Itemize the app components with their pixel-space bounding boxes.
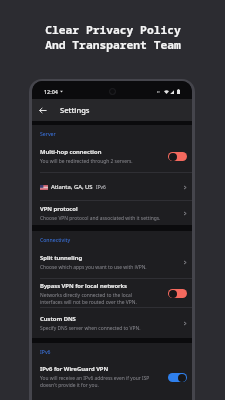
staticText: Connectivity bbox=[40, 237, 71, 244]
staticText: Clear Privacy Policy bbox=[45, 22, 181, 37]
staticText: Networks directly connected to the local… bbox=[40, 292, 137, 306]
staticText: You will receive an IPv6 address even if… bbox=[40, 375, 150, 389]
staticText: Server bbox=[40, 131, 56, 138]
button[interactable]: VPN protocol bbox=[32, 201, 192, 225]
button[interactable]: Bypass VPN for local networks bbox=[32, 279, 192, 308]
button[interactable]: Multi-hop connection bbox=[32, 139, 192, 173]
staticText: Custom DNS bbox=[40, 315, 76, 323]
staticText: And Transparent Team bbox=[45, 37, 181, 52]
staticText: You will be redirected through 2 servers… bbox=[40, 158, 133, 165]
button[interactable]: Split tunneling bbox=[32, 246, 192, 279]
button[interactable]: Atlanta, GA, US bbox=[32, 173, 192, 201]
staticText: Atlanta, GA, US bbox=[51, 183, 93, 191]
staticText: Choose which apps you want to use with i… bbox=[40, 264, 147, 271]
button[interactable]: Custom DNS bbox=[32, 308, 192, 338]
staticText: 12:04 bbox=[44, 88, 58, 95]
staticText: Bypass VPN for local networks bbox=[40, 282, 127, 290]
button[interactable]: IPv6 for WireGuard VPN bbox=[32, 357, 192, 397]
button[interactable]: Back bbox=[32, 99, 54, 121]
button[interactable]: Toggle bbox=[168, 289, 187, 298]
staticText: IPv6 bbox=[96, 184, 106, 191]
staticText: Multi-hop connection bbox=[40, 148, 102, 156]
staticText: Specify DNS server when connected to VPN… bbox=[40, 325, 141, 332]
button[interactable]: Toggle bbox=[168, 152, 187, 161]
staticText: Choose VPN protocol and associated with … bbox=[40, 215, 161, 222]
staticText: Settings bbox=[60, 105, 90, 115]
staticText: Split tunneling bbox=[40, 254, 83, 262]
staticText: IPv6 for WireGuard VPN bbox=[40, 365, 109, 373]
staticText: VPN protocol bbox=[40, 205, 78, 213]
staticText: IPv6 bbox=[40, 349, 51, 356]
button[interactable]: Toggle bbox=[168, 373, 187, 382]
